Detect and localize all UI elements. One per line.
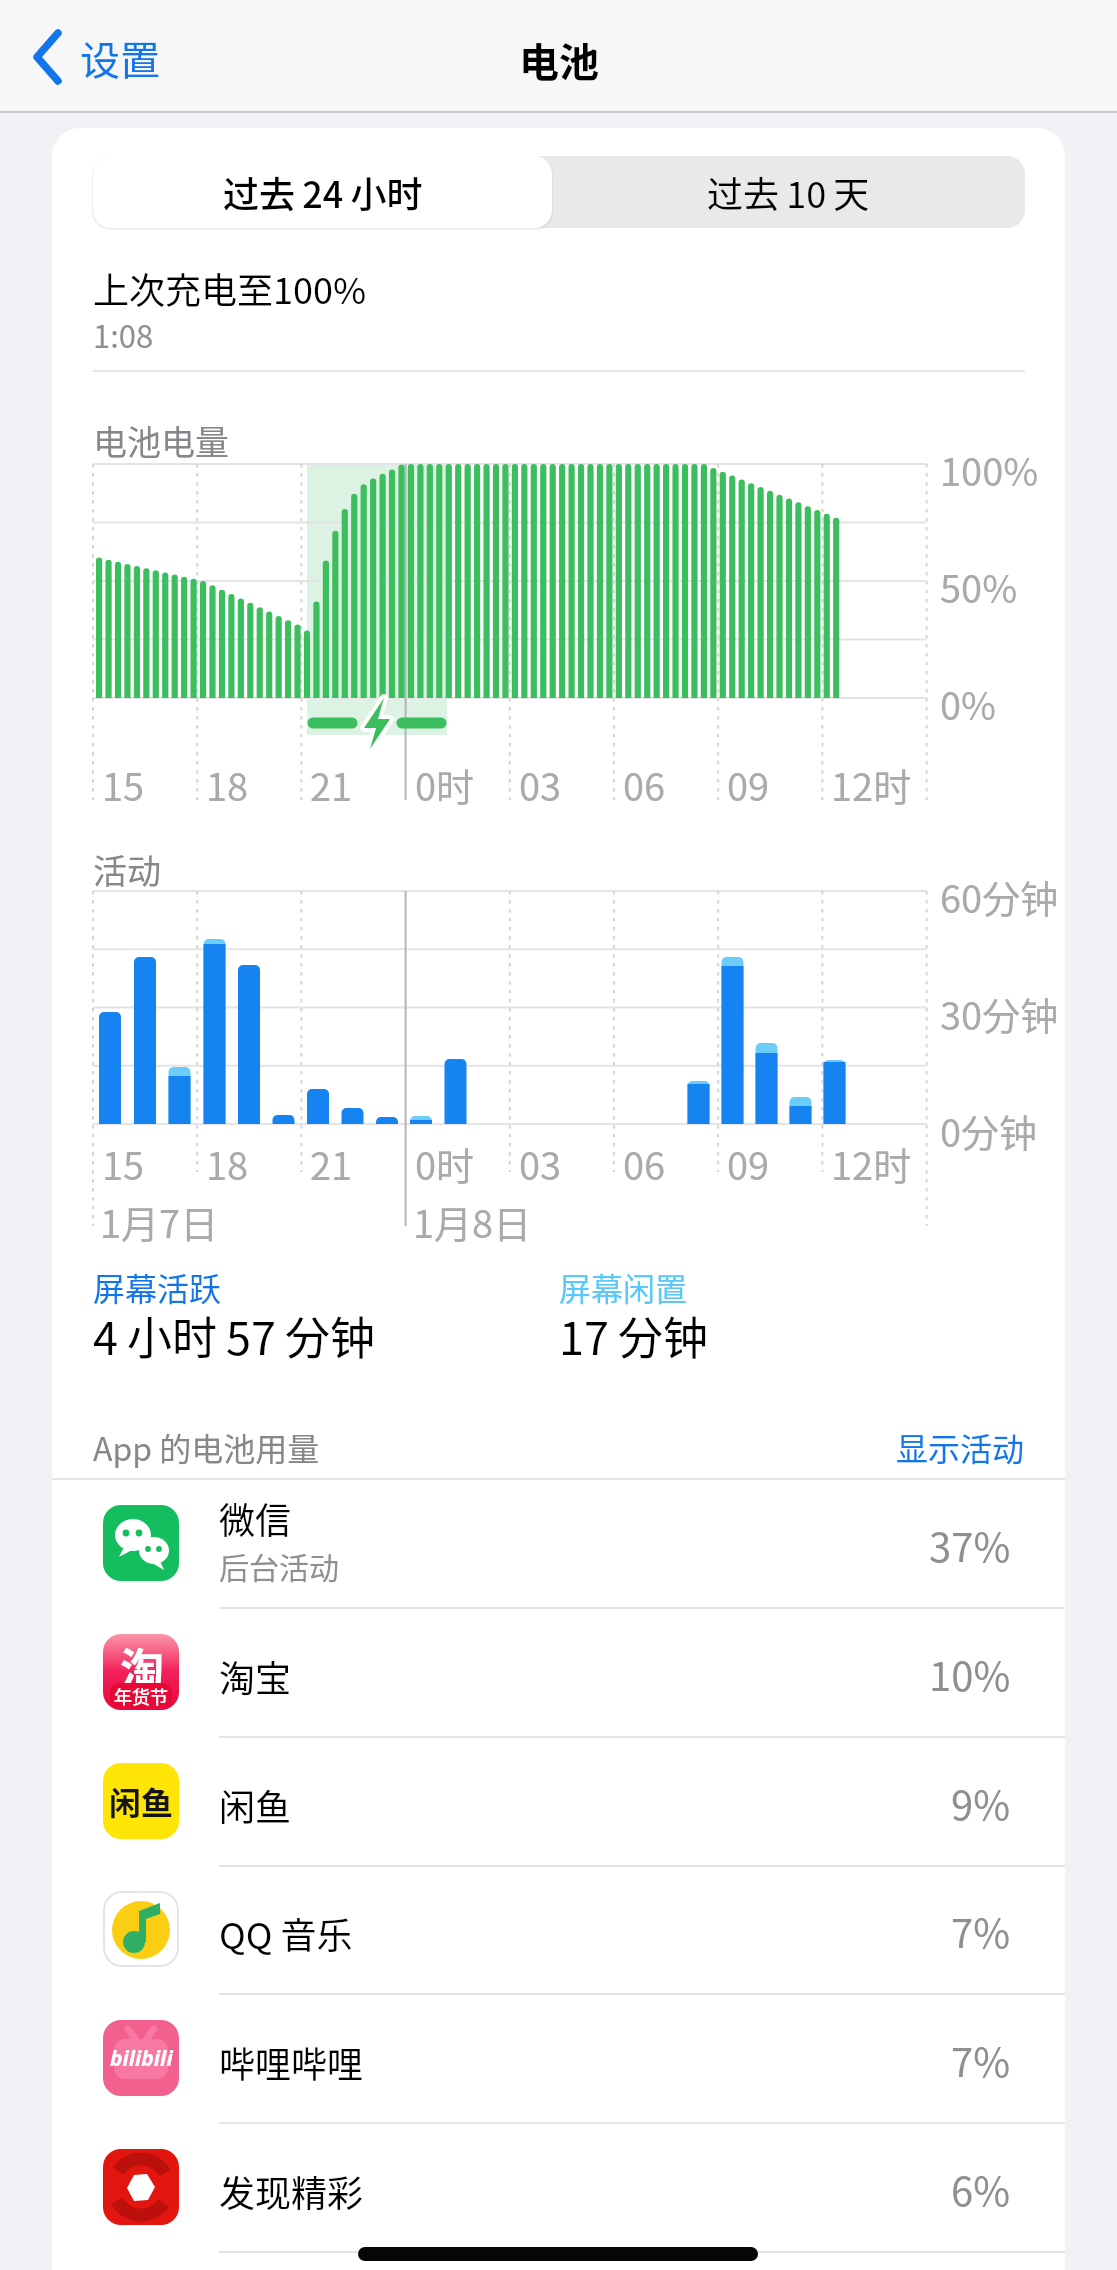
staticText: 6% xyxy=(951,2160,1011,2218)
staticText: 淘 xyxy=(120,1635,164,1699)
staticText: 过去 24 小时 xyxy=(223,166,423,218)
staticText: 微信 xyxy=(219,1492,292,1544)
staticText: 15 xyxy=(102,1136,145,1191)
staticText: bilibili xyxy=(110,2044,173,2073)
staticText: 7% xyxy=(951,1902,1011,1960)
staticText: 1:08 xyxy=(93,312,154,357)
staticText: 4 小时 57 分钟 xyxy=(93,1303,375,1368)
staticText: 0时 xyxy=(415,757,475,812)
staticText: 1月8日 xyxy=(413,1194,532,1249)
button[interactable]: QQ 音乐 xyxy=(52,1866,1065,1995)
staticText: 后台活动 xyxy=(219,1544,339,1587)
staticText: 17 分钟 xyxy=(559,1303,708,1368)
button[interactable]: 显示活动 xyxy=(825,1424,1025,1470)
staticText: 30分钟 xyxy=(940,986,1059,1041)
button[interactable]: 设置 xyxy=(20,20,200,95)
staticText: 12时 xyxy=(831,1136,912,1191)
staticText: 03 xyxy=(519,757,562,812)
staticText: 屏幕活跃 xyxy=(93,1264,222,1310)
staticText: 06 xyxy=(623,1136,666,1191)
staticText: 06 xyxy=(623,757,666,812)
staticText: 哔哩哔哩 xyxy=(219,2036,364,2088)
staticText: 电池 xyxy=(519,31,599,89)
staticText: 21 xyxy=(310,757,353,812)
staticText: 上次充电至100% xyxy=(93,262,367,314)
staticText: 18 xyxy=(206,1136,249,1191)
staticText: 0时 xyxy=(415,1136,475,1191)
staticText: 12时 xyxy=(831,757,912,812)
staticText: 1月7日 xyxy=(100,1194,219,1249)
staticText: 设置 xyxy=(80,29,160,87)
staticText: 10% xyxy=(929,1645,1011,1703)
staticText: 电池电量 xyxy=(93,416,229,465)
staticText: 18 xyxy=(206,757,249,812)
staticText: 显示活动 xyxy=(896,1424,1025,1470)
button[interactable]: 闲鱼 xyxy=(52,1738,1065,1867)
staticText: 淘宝 xyxy=(219,1650,292,1702)
staticText: 7% xyxy=(951,2031,1011,2089)
staticText: 100% xyxy=(940,442,1039,497)
staticText: App 的电池用量 xyxy=(93,1424,320,1470)
staticText: 过去 10 天 xyxy=(707,166,870,218)
staticText: 闲鱼 xyxy=(109,1778,174,1824)
button[interactable]: 发现精彩 xyxy=(52,2124,1065,2253)
staticText: 09 xyxy=(727,1136,770,1191)
staticText: 屏幕闲置 xyxy=(559,1264,688,1310)
staticText: 60分钟 xyxy=(940,869,1059,924)
button[interactable]: bilibili xyxy=(52,1995,1065,2124)
staticText: QQ 音乐 xyxy=(219,1907,353,1959)
staticText: 50% xyxy=(940,559,1018,614)
staticText: 年货节 xyxy=(114,1683,168,1708)
staticText: 09 xyxy=(727,757,770,812)
button[interactable]: 淘 xyxy=(52,1609,1065,1738)
staticText: 15 xyxy=(102,757,145,812)
staticText: 0分钟 xyxy=(940,1103,1038,1158)
button[interactable]: 过去 10 天 xyxy=(552,156,1025,228)
button[interactable]: 过去 24 小时 xyxy=(93,156,552,228)
staticText: 03 xyxy=(519,1136,562,1191)
staticText: 37% xyxy=(929,1516,1011,1574)
staticText: 21 xyxy=(310,1136,353,1191)
staticText: 0% xyxy=(940,676,997,731)
staticText: 闲鱼 xyxy=(219,1779,292,1831)
button[interactable]: 微信 xyxy=(52,1480,1065,1609)
staticText: 发现精彩 xyxy=(219,2165,364,2217)
staticText: 活动 xyxy=(93,845,161,894)
staticText: 9% xyxy=(951,1774,1011,1832)
